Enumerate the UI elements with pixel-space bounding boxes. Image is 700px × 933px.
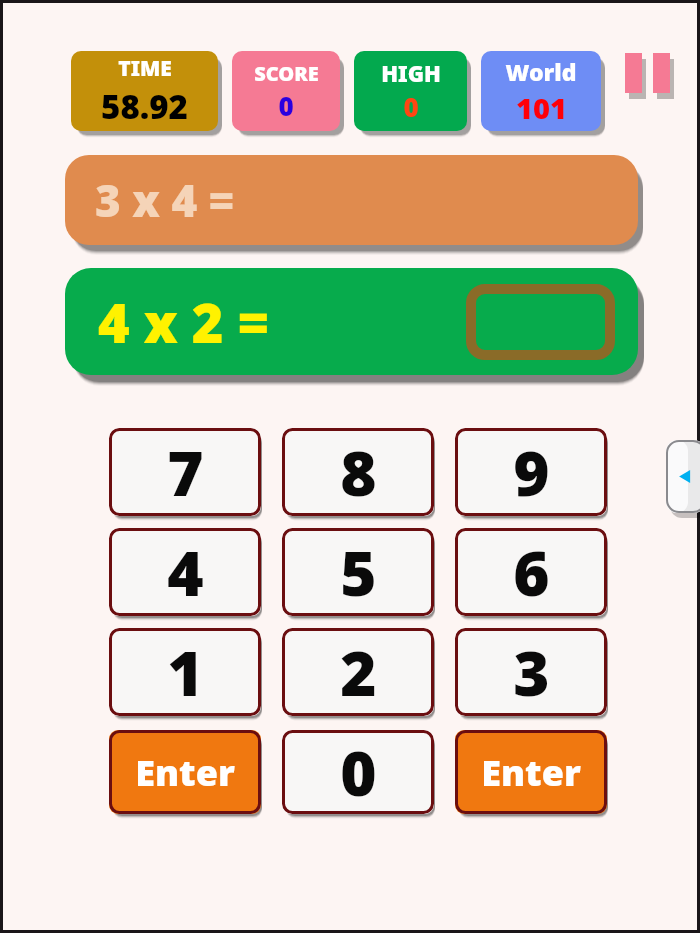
staticText: TIME [118,54,172,83]
button[interactable]: SCORE [232,51,340,131]
button[interactable]: 3 [455,628,607,716]
button[interactable]: 0 [282,730,434,814]
staticText: 4 x 2 = [98,285,270,359]
button[interactable]: HIGH [354,51,467,131]
button[interactable]: Enter [455,730,607,814]
staticText: 9 [513,430,550,514]
button[interactable]: TIME [71,51,218,131]
staticText: 3 [513,630,550,714]
button[interactable]: 6 [455,528,607,616]
button[interactable]: 1 [109,628,261,716]
staticText: 101 [516,88,567,127]
button[interactable]: Enter [109,730,261,814]
staticText: 58.92 [101,84,188,129]
staticText: 0 [340,730,377,814]
staticText: 0 [403,89,419,124]
staticText: 6 [513,530,550,614]
button[interactable]: 8 [282,428,434,516]
button[interactable]: Pause [625,53,675,101]
staticText: 0 [278,88,294,123]
button[interactable]: 4 x 2 = [65,268,638,375]
staticText: World [505,56,577,87]
staticText: 8 [340,430,377,514]
button[interactable]: 9 [455,428,607,516]
staticText: Enter [481,748,581,797]
button[interactable]: 2 [282,628,434,716]
button[interactable]: World [481,51,601,131]
staticText: 1 [167,630,204,714]
staticText: 7 [167,430,204,514]
staticText: SCORE [254,60,319,87]
button[interactable]: Open side panel [666,440,700,513]
staticText: 5 [340,530,377,614]
staticText: Enter [135,748,235,797]
staticText: 2 [340,630,377,714]
button[interactable]: 5 [282,528,434,616]
staticText: HIGH [381,58,441,88]
staticText: 4 [167,530,204,614]
button[interactable]: 3 x 4 = [65,155,638,245]
button[interactable]: 4 [109,528,261,616]
staticText: 3 x 4 = [95,170,235,230]
button[interactable]: 7 [109,428,261,516]
